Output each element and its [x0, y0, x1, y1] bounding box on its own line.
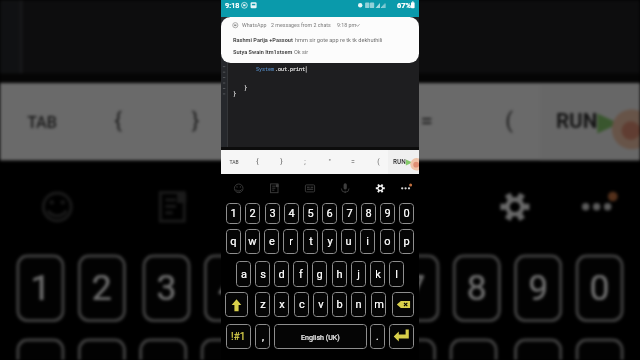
button[interactable]: Text modes: [300, 177, 318, 197]
button[interactable]: Clipboard: [265, 177, 283, 197]
button[interactable]: Settings: [371, 177, 389, 197]
button[interactable]: 3: [142, 254, 191, 322]
button[interactable]: p: [575, 338, 624, 360]
button[interactable]: 8: [361, 203, 376, 224]
button[interactable]: More options: [566, 170, 624, 235]
button[interactable]: w: [78, 338, 126, 360]
button[interactable]: f: [293, 261, 308, 287]
button[interactable]: 7: [342, 203, 357, 224]
button[interactable]: t: [265, 338, 314, 360]
button[interactable]: u: [341, 229, 356, 254]
button[interactable]: w: [245, 229, 260, 254]
button[interactable]: 5: [303, 203, 318, 224]
button[interactable]: Clipboard: [142, 170, 200, 235]
button[interactable]: Settings: [485, 170, 543, 235]
button[interactable]: ;: [236, 83, 307, 161]
button[interactable]: e: [264, 229, 279, 254]
staticText: s: [260, 268, 266, 281]
button[interactable]: q: [226, 229, 241, 254]
button[interactable]: y: [326, 338, 375, 360]
staticText: h: [336, 268, 343, 281]
staticText: 8: [365, 207, 372, 220]
button[interactable]: 9: [514, 254, 562, 322]
button[interactable]: Voice input: [335, 177, 353, 197]
button[interactable]: 1: [226, 203, 241, 224]
button[interactable]: (: [472, 83, 543, 161]
button[interactable]: Enter: [389, 324, 414, 349]
button[interactable]: ": [313, 83, 385, 161]
button[interactable]: }: [270, 150, 292, 174]
button[interactable]: 5: [265, 254, 314, 322]
button[interactable]: Voice input: [368, 170, 427, 235]
button[interactable]: Comma: [255, 324, 270, 349]
button[interactable]: Symbols: [226, 324, 251, 349]
button[interactable]: h: [332, 261, 347, 287]
button[interactable]: m: [371, 292, 386, 317]
button[interactable]: b: [332, 292, 347, 317]
button[interactable]: c: [294, 292, 309, 317]
button[interactable]: Emoji: [29, 170, 87, 235]
button[interactable]: 2: [245, 203, 260, 224]
button[interactable]: j: [351, 261, 366, 287]
button[interactable]: o: [380, 229, 395, 254]
button[interactable]: WhatsApp: [221, 17, 419, 63]
button[interactable]: Backspace: [392, 292, 414, 317]
button[interactable]: 4: [204, 254, 252, 322]
button[interactable]: o: [514, 338, 562, 360]
button[interactable]: a: [236, 261, 251, 287]
button[interactable]: e: [139, 338, 187, 360]
button[interactable]: (: [367, 150, 389, 174]
button[interactable]: 8: [452, 254, 501, 322]
button[interactable]: z: [255, 292, 270, 317]
button[interactable]: y: [322, 229, 337, 254]
button[interactable]: Text modes: [255, 170, 314, 235]
button[interactable]: More options: [396, 177, 414, 197]
button[interactable]: Period: [370, 324, 385, 349]
button[interactable]: 7: [391, 254, 440, 322]
button[interactable]: r: [200, 338, 249, 360]
button[interactable]: q: [16, 338, 65, 360]
button[interactable]: 6: [322, 203, 337, 224]
button[interactable]: TAB: [6, 83, 78, 161]
button[interactable]: v: [313, 292, 328, 317]
button[interactable]: k: [370, 261, 385, 287]
button[interactable]: =: [342, 150, 364, 174]
button[interactable]: i: [360, 229, 375, 254]
button[interactable]: s: [255, 261, 270, 287]
button[interactable]: g: [312, 261, 327, 287]
button[interactable]: x: [274, 292, 289, 317]
staticText: 2: [90, 267, 113, 309]
button[interactable]: 1: [16, 254, 65, 322]
button[interactable]: 4: [284, 203, 299, 224]
button[interactable]: ;: [294, 150, 316, 174]
button[interactable]: Shift: [225, 292, 248, 317]
button[interactable]: r: [283, 229, 298, 254]
staticText: v: [318, 298, 324, 311]
button[interactable]: l: [389, 261, 404, 287]
button[interactable]: 2: [78, 254, 126, 322]
button[interactable]: t: [303, 229, 318, 254]
button[interactable]: n: [351, 292, 366, 317]
button[interactable]: =: [391, 83, 462, 161]
button[interactable]: 0: [399, 203, 414, 224]
button[interactable]: RUN: [540, 83, 640, 161]
button[interactable]: Space: [274, 324, 367, 349]
button[interactable]: 3: [265, 203, 280, 224]
button[interactable]: 0: [575, 254, 624, 322]
staticText: 6: [339, 267, 362, 309]
button[interactable]: p: [399, 229, 414, 254]
button[interactable]: Emoji: [230, 177, 248, 197]
button[interactable]: 9: [380, 203, 395, 224]
button[interactable]: {: [246, 150, 268, 174]
button[interactable]: 6: [326, 254, 375, 322]
button[interactable]: TAB: [223, 150, 245, 174]
button[interactable]: u: [388, 338, 436, 360]
button[interactable]: RUN: [388, 150, 419, 174]
button[interactable]: d: [274, 261, 289, 287]
staticText: Ok sir: [294, 49, 309, 56]
button[interactable]: {: [81, 83, 152, 161]
button[interactable]: }: [158, 83, 229, 161]
button[interactable]: ": [318, 150, 340, 174]
button[interactable]: i: [449, 338, 498, 360]
